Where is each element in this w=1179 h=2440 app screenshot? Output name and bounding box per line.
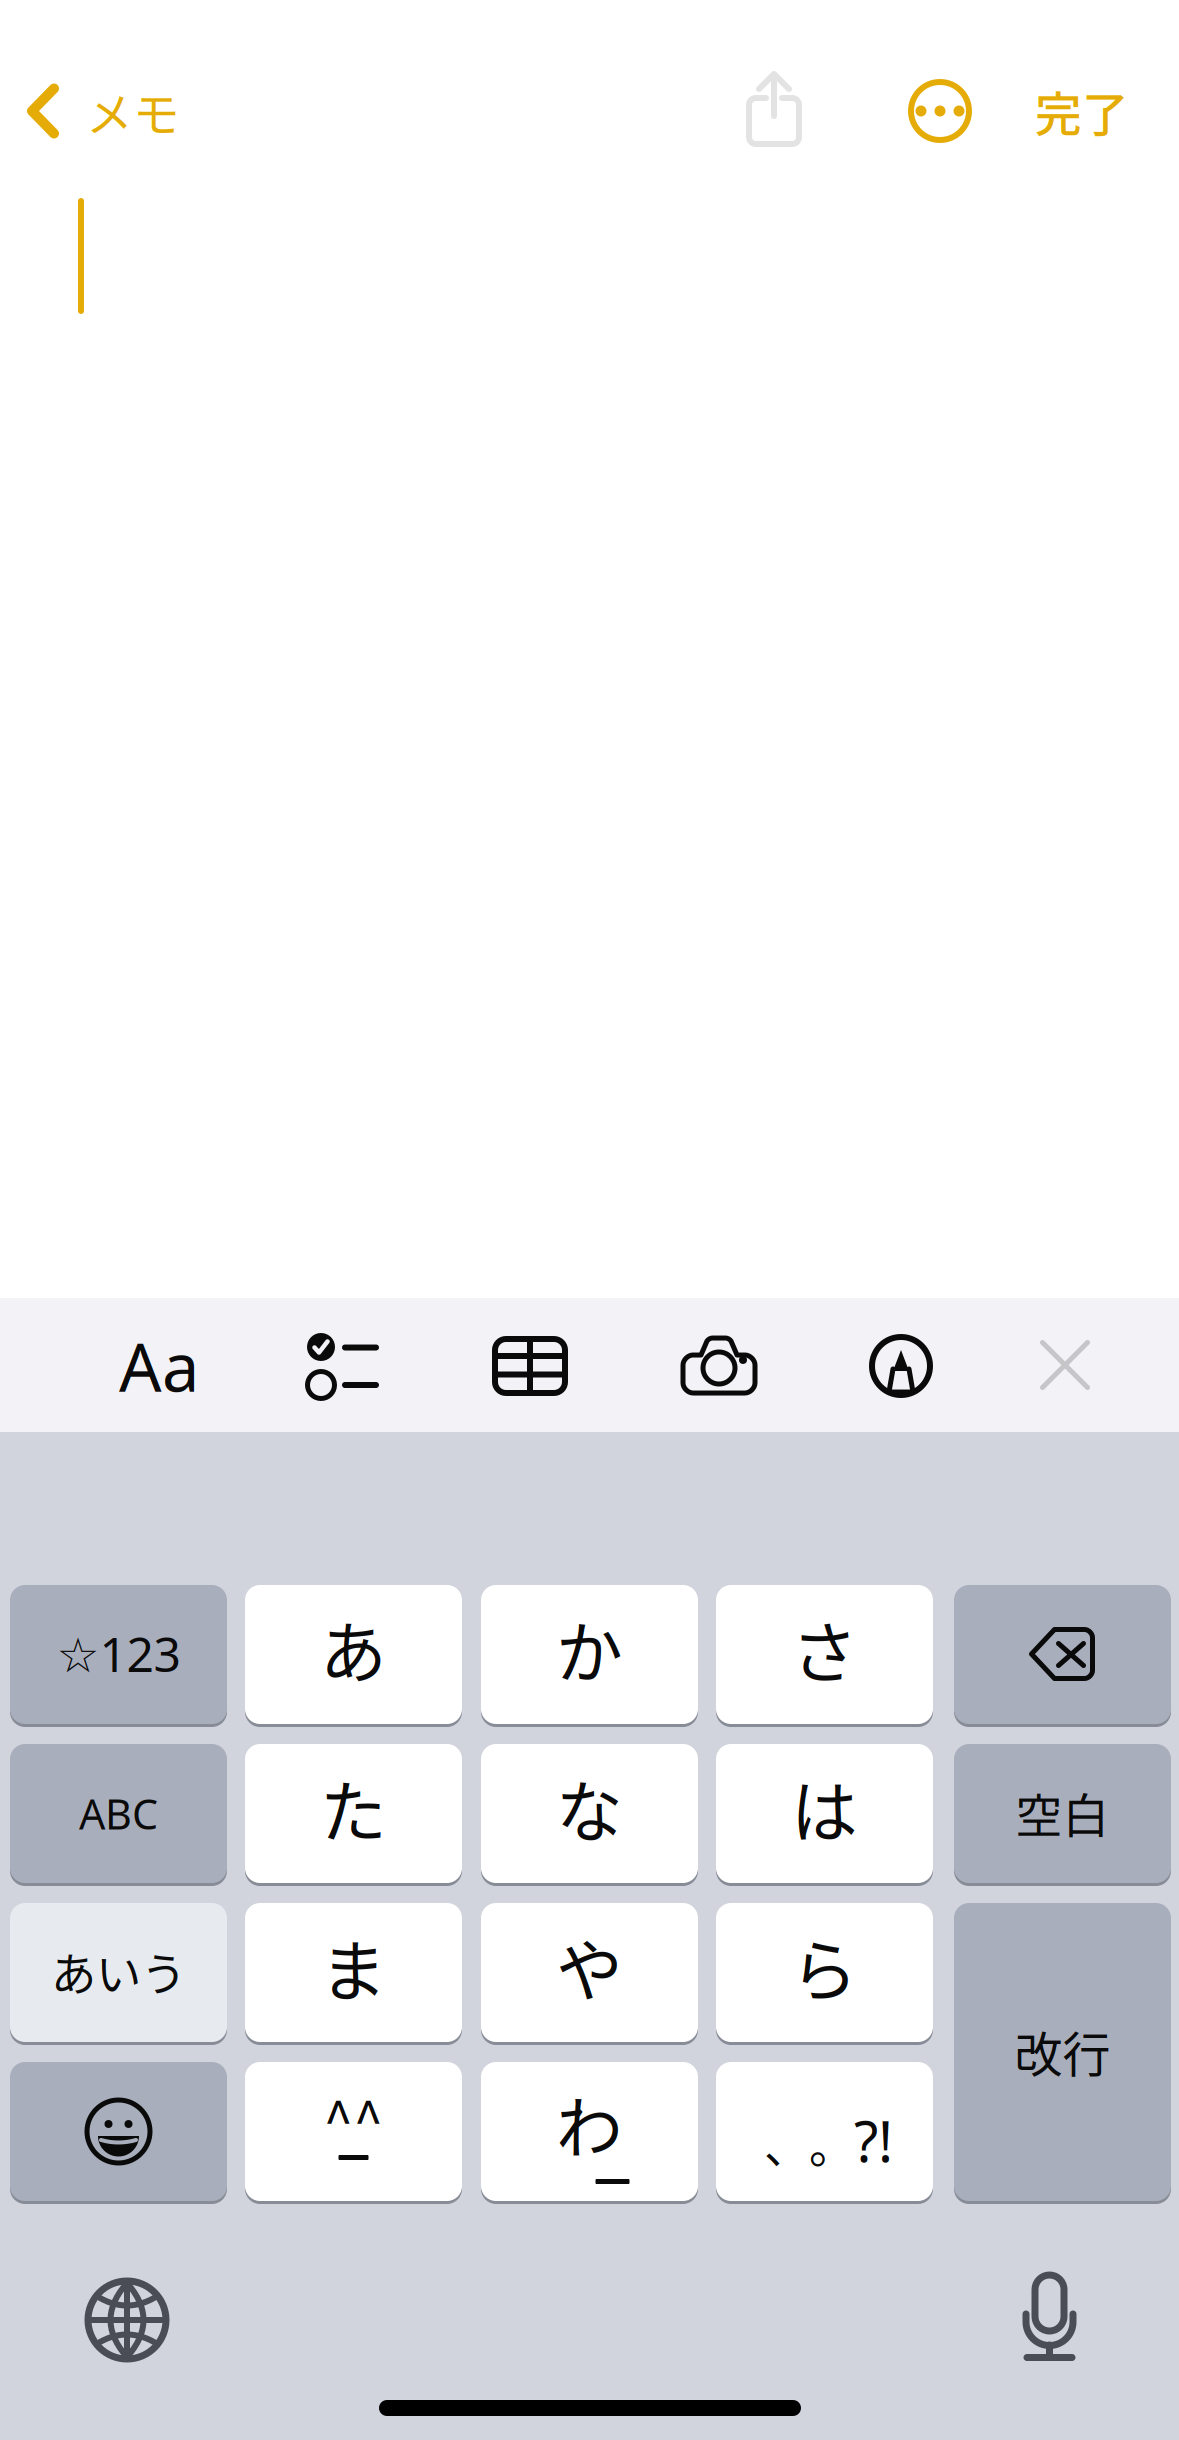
button[interactable]: さ [716, 1585, 933, 1724]
button[interactable]: わ [481, 2062, 698, 2201]
button[interactable]: More [908, 79, 972, 143]
button[interactable]: ^^ [245, 2062, 462, 2201]
staticText: ?! [854, 2102, 893, 2179]
staticText: か [556, 1600, 623, 1697]
button[interactable]: 完了 [1028, 80, 1136, 142]
staticText: 、。 [764, 2111, 854, 2177]
staticText: あいう [51, 1939, 186, 2004]
staticText: ま [320, 1918, 387, 2015]
staticText: た [320, 1759, 387, 1856]
staticText: 空白 [1015, 1779, 1109, 1846]
button[interactable]: ら [716, 1903, 933, 2042]
button[interactable] [954, 1585, 1171, 1724]
staticText: わ [556, 2075, 623, 2172]
button[interactable]: メモ [26, 80, 246, 142]
staticText: Aa [119, 1321, 199, 1411]
button[interactable]: ABC [10, 1744, 227, 1883]
button[interactable]: ☆123 [10, 1585, 227, 1724]
button[interactable]: Aa [119, 1336, 199, 1396]
button[interactable]: ま [245, 1903, 462, 2042]
staticText: ☆123 [56, 1621, 180, 1686]
button[interactable]: な [481, 1744, 698, 1883]
staticText: 改行 [1014, 2016, 1110, 2086]
staticText: あ [320, 1600, 387, 1697]
button[interactable]: や [481, 1903, 698, 2042]
button[interactable]: た [245, 1744, 462, 1883]
button[interactable]: Markup [869, 1334, 933, 1398]
button[interactable]: Dictation [1022, 2274, 1078, 2362]
button[interactable]: か [481, 1585, 698, 1724]
staticText: ABC [79, 1785, 158, 1842]
button[interactable]: あいう [10, 1903, 227, 2042]
button[interactable]: Checklist [307, 1333, 379, 1399]
button[interactable]: 空白 [954, 1744, 1171, 1883]
staticText: ^^ [323, 2079, 383, 2156]
button[interactable]: Next keyboard [88, 2281, 166, 2359]
button[interactable]: 、。 [716, 2062, 933, 2201]
staticText: な [556, 1759, 623, 1856]
staticText: メモ [86, 77, 180, 145]
button[interactable]: Camera [680, 1335, 758, 1396]
button[interactable]: は [716, 1744, 933, 1883]
staticText: は [791, 1759, 858, 1856]
staticText: ら [791, 1918, 858, 2015]
button[interactable]: Share [746, 72, 802, 148]
staticText: 完了 [1035, 77, 1129, 145]
button[interactable]: Table [492, 1336, 568, 1395]
staticText: や [556, 1918, 623, 2015]
button[interactable]: Close keyboard [1040, 1340, 1090, 1390]
staticText: さ [791, 1600, 858, 1697]
button[interactable]: あ [245, 1585, 462, 1724]
button[interactable]: 改行 [954, 1903, 1171, 2201]
button[interactable] [10, 2062, 227, 2201]
